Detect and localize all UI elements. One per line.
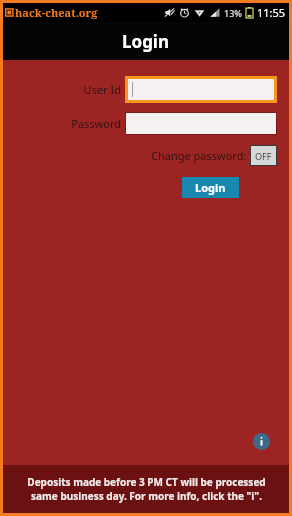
staticText: 13% <box>224 7 242 19</box>
staticText: Login <box>122 30 170 53</box>
staticText: Change password: <box>151 148 247 163</box>
button[interactable]: More info <box>251 431 271 451</box>
button[interactable]: Deposits made before 3 PM CT will be pro… <box>3 465 289 513</box>
button[interactable] <box>128 79 274 100</box>
staticText: hack-cheat.org <box>15 5 98 20</box>
staticText: User Id <box>15 82 121 97</box>
staticText: Password <box>15 116 121 131</box>
button[interactable] <box>125 112 277 135</box>
staticText: OFF <box>255 150 272 162</box>
button[interactable]: Login <box>182 177 239 198</box>
staticText: Login <box>195 180 226 195</box>
button[interactable]: OFF <box>250 145 277 166</box>
staticText: 11:55 <box>257 5 286 20</box>
staticText: Deposits made before 3 PM CT will be pro… <box>27 475 266 503</box>
